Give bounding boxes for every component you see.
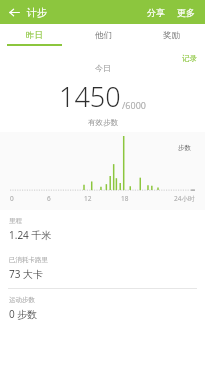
button[interactable]: 更多 <box>173 4 199 21</box>
staticText: 0 <box>10 194 14 203</box>
staticText: 运动步数 <box>9 296 35 304</box>
staticText: 6 <box>47 194 51 203</box>
staticText: 昨日 <box>26 30 43 41</box>
button[interactable]: 奖励 <box>137 24 205 46</box>
button[interactable]: 已消耗卡路里 <box>0 249 205 288</box>
staticText: 里程 <box>9 217 22 225</box>
staticText: 73 大卡 <box>9 267 44 281</box>
button[interactable]: Back <box>4 2 24 22</box>
button[interactable]: 昨日 <box>0 24 69 46</box>
button[interactable]: 他们 <box>69 24 137 46</box>
staticText: 有效步数 <box>88 118 118 127</box>
button[interactable]: 运动步数 <box>0 289 205 328</box>
staticText: 24小时 <box>174 194 195 203</box>
staticText: 奖励 <box>163 30 180 41</box>
staticText: 12 <box>84 194 92 203</box>
staticText: 更多 <box>177 7 195 18</box>
staticText: 0 步数 <box>9 307 38 321</box>
staticText: 分享 <box>147 7 165 18</box>
staticText: 1450 <box>59 78 121 115</box>
staticText: 18 <box>121 194 129 203</box>
staticText: 计步 <box>27 6 47 19</box>
staticText: 他们 <box>95 30 112 41</box>
staticText: 步数 <box>178 144 191 152</box>
staticText: 1.24 千米 <box>9 228 52 242</box>
button[interactable]: 记录 <box>180 52 199 65</box>
button[interactable]: 里程 <box>0 210 205 249</box>
button[interactable]: 分享 <box>143 4 169 21</box>
staticText: 已消耗卡路里 <box>9 256 48 264</box>
staticText: /6000 <box>122 99 146 111</box>
staticText: 今日 <box>95 63 111 73</box>
staticText: 记录 <box>182 54 197 63</box>
